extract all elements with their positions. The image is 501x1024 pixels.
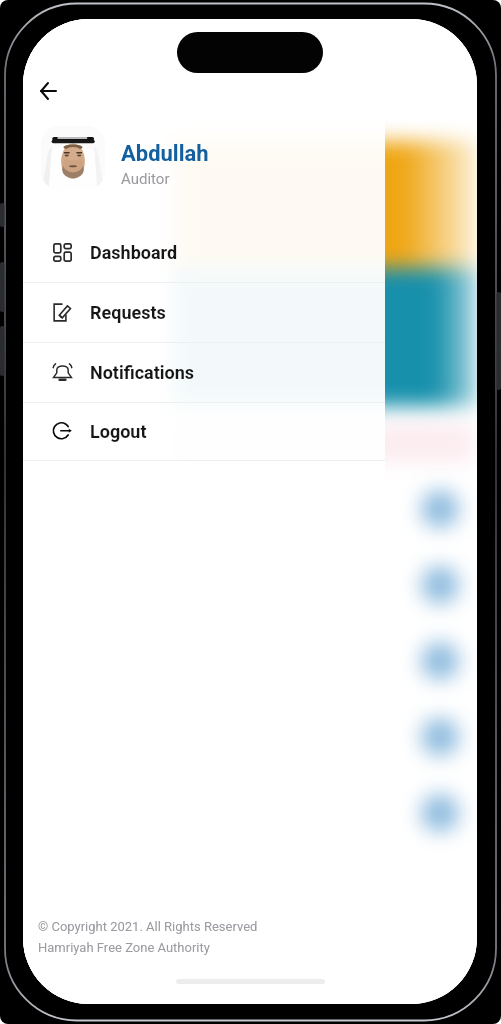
staticText: Dashboard — [90, 242, 178, 263]
button[interactable]: Requests — [23, 283, 385, 342]
button[interactable]: Logout — [23, 403, 385, 460]
staticText: Auditor — [121, 170, 170, 188]
staticText: Hamriyah Free Zone Authority — [38, 940, 210, 955]
staticText: Notifications — [90, 362, 195, 383]
staticText: © Copyright 2021. All Rights Reserved — [38, 919, 258, 934]
button[interactable]: Notifications — [23, 343, 385, 402]
staticText: Abdullah — [121, 141, 209, 167]
staticText: Logout — [90, 421, 147, 442]
button[interactable]: Back — [26, 69, 69, 112]
button[interactable]: Dashboard — [23, 223, 385, 282]
staticText: Requests — [90, 302, 166, 323]
